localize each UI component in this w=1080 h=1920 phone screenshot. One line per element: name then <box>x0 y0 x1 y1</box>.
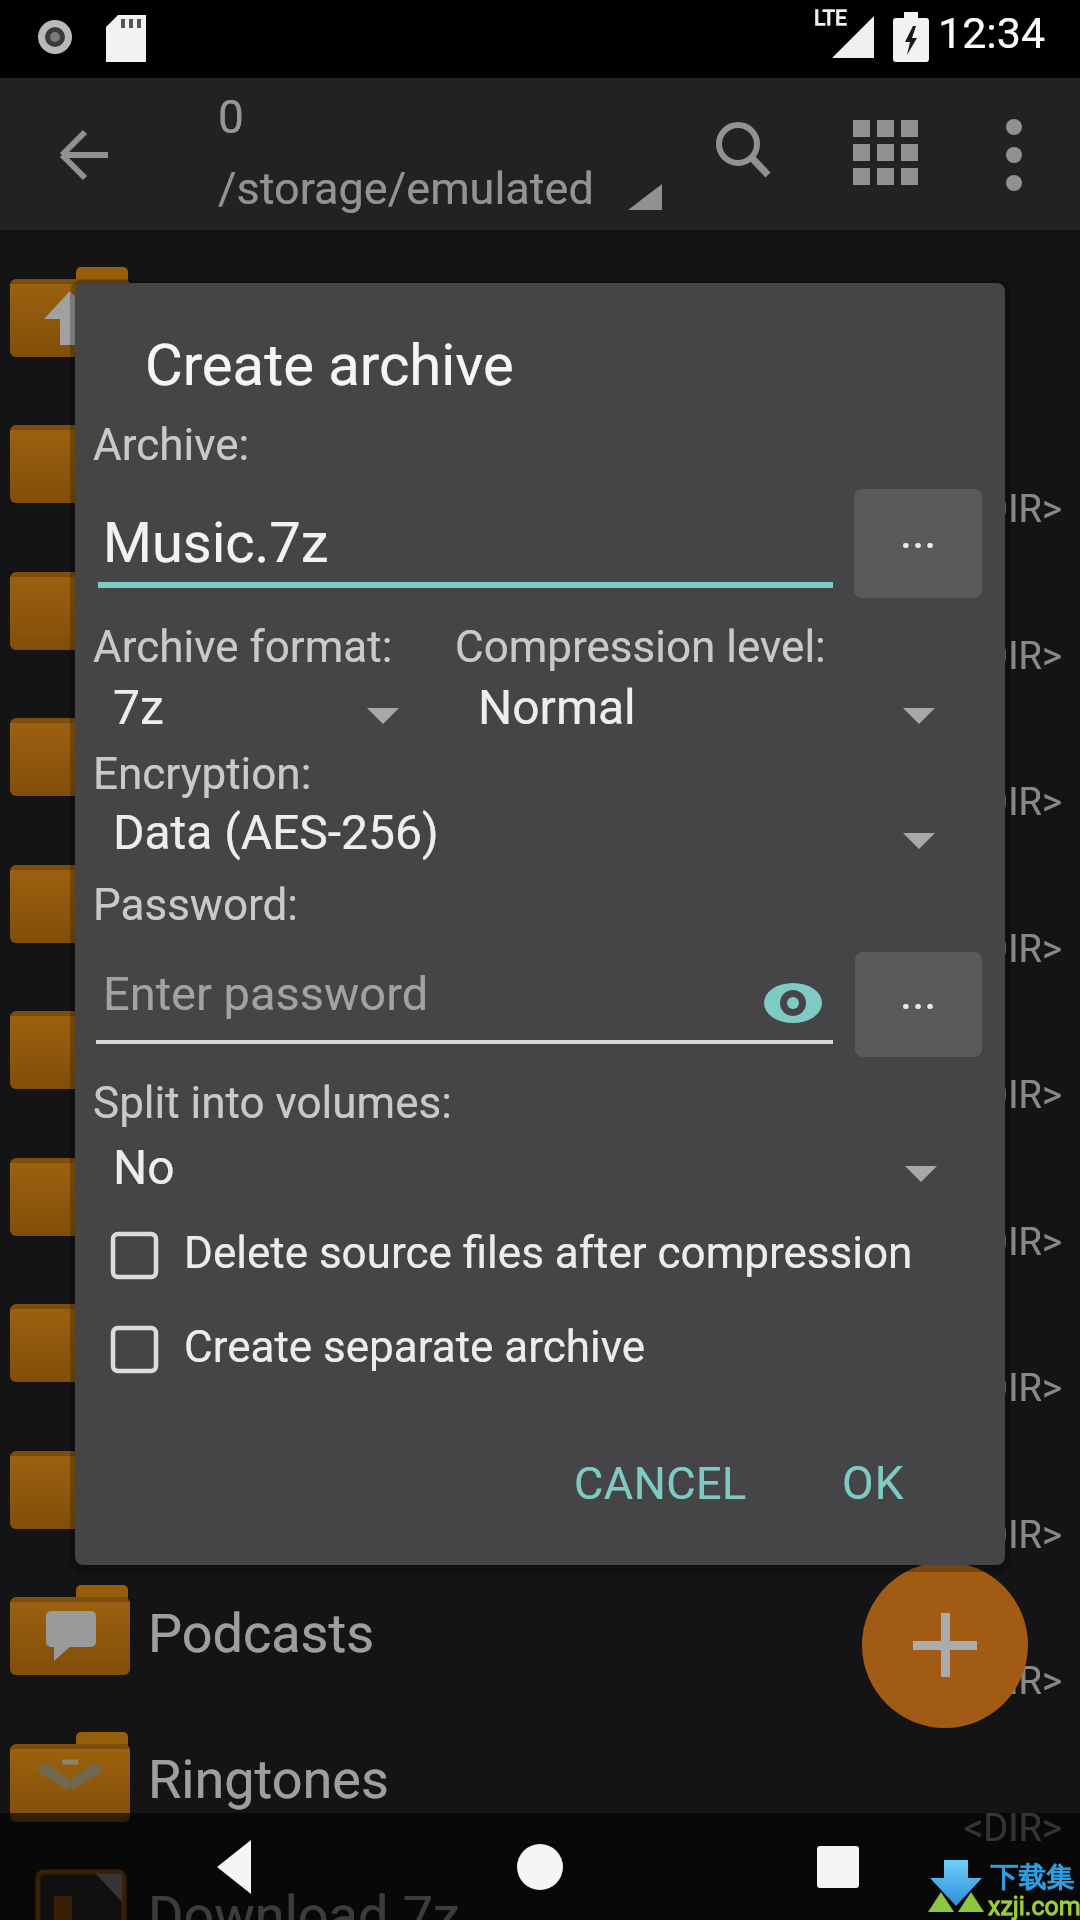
button[interactable] <box>96 949 833 1045</box>
staticText: Ringtones <box>148 1748 389 1811</box>
button[interactable] <box>0 841 1080 987</box>
button[interactable] <box>764 981 822 1027</box>
button[interactable] <box>0 1427 1080 1573</box>
staticText: <DIR> <box>964 1513 1062 1558</box>
button[interactable] <box>105 1317 965 1383</box>
staticText: Create archive <box>145 331 514 399</box>
button[interactable] <box>0 255 1080 401</box>
button[interactable]: ... <box>854 489 982 598</box>
staticText: Split into volumes: <box>93 1077 452 1129</box>
staticText: <DIR> <box>964 780 1062 825</box>
button[interactable] <box>862 1562 1028 1728</box>
staticText: Enter password <box>103 966 429 1021</box>
staticText: Normal <box>478 679 636 735</box>
button[interactable] <box>791 1818 885 1915</box>
button[interactable] <box>712 120 774 182</box>
staticText: No <box>113 1139 175 1195</box>
staticText: ... <box>900 505 937 559</box>
staticText: Create separate archive <box>184 1321 646 1373</box>
staticText: Archive format: <box>93 621 393 673</box>
button[interactable] <box>188 1818 282 1915</box>
button[interactable] <box>853 120 919 186</box>
button[interactable] <box>0 1134 1080 1280</box>
staticText: Compression level: <box>455 621 826 673</box>
staticText: CANCEL <box>574 1457 747 1510</box>
staticText: Podcasts <box>148 1602 375 1665</box>
staticText: /storage/emulated <box>218 162 594 215</box>
staticText: 7z <box>113 679 164 735</box>
staticText: xzji.com <box>988 1892 1080 1920</box>
button[interactable] <box>98 792 943 864</box>
button[interactable] <box>493 1818 587 1915</box>
staticText: <DIR> <box>964 1220 1062 1265</box>
staticText: <DIR> <box>964 1806 1062 1851</box>
staticText: OK <box>842 1456 905 1510</box>
staticText: Music.7z <box>103 510 329 576</box>
button[interactable] <box>0 694 1080 840</box>
staticText: <DIR> <box>964 487 1062 532</box>
staticText: LTE <box>814 6 847 31</box>
button[interactable] <box>463 667 943 739</box>
staticText: ... <box>900 966 937 1020</box>
staticText: <DIR> <box>964 1659 1062 1704</box>
button[interactable] <box>58 128 112 182</box>
button[interactable] <box>105 1223 965 1289</box>
button[interactable] <box>0 1720 1080 1866</box>
staticText: Delete source files after compression <box>184 1227 913 1279</box>
button[interactable] <box>994 118 1034 190</box>
staticText: Encryption: <box>93 748 312 800</box>
staticText: 下载集 <box>990 1860 1074 1895</box>
button[interactable] <box>0 548 1080 694</box>
staticText: Password: <box>93 879 299 931</box>
button[interactable]: OK <box>798 1433 948 1533</box>
button[interactable] <box>0 987 1080 1133</box>
staticText: Download.7z <box>148 1884 460 1920</box>
button[interactable] <box>98 493 833 589</box>
staticText: Archive: <box>93 419 250 471</box>
staticText: Data (AES-256) <box>113 804 439 860</box>
button[interactable] <box>98 667 408 739</box>
staticText: 0 <box>218 90 244 144</box>
staticText: <DIR> <box>964 1366 1062 1411</box>
staticText: <DIR> <box>964 1073 1062 1118</box>
button[interactable] <box>0 1573 1080 1719</box>
button[interactable] <box>0 1280 1080 1426</box>
button[interactable]: CANCEL <box>555 1433 765 1533</box>
staticText: 12:34 <box>938 8 1046 58</box>
button[interactable]: ... <box>855 952 982 1057</box>
staticText: <DIR> <box>964 927 1062 972</box>
button[interactable] <box>0 401 1080 547</box>
button[interactable] <box>98 1127 943 1199</box>
staticText: <DIR> <box>964 634 1062 679</box>
